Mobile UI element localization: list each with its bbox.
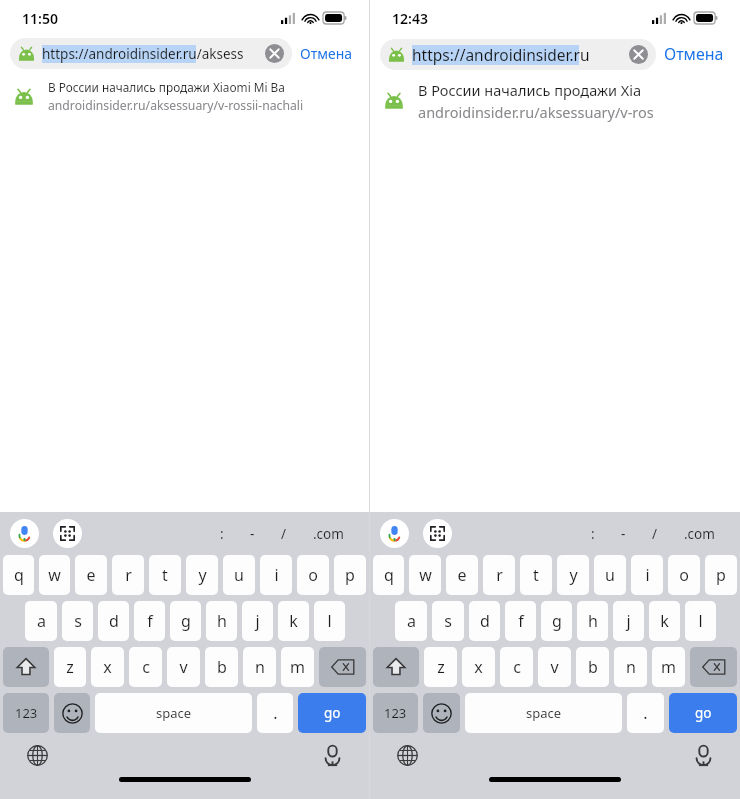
button[interactable]: - [237, 519, 268, 549]
button[interactable]: w [39, 555, 70, 595]
button[interactable]: Clear text [629, 45, 648, 64]
staticText: k [660, 610, 669, 632]
button[interactable]: a [395, 601, 427, 641]
button[interactable]: space [95, 693, 252, 733]
button[interactable]: f [134, 601, 165, 641]
button[interactable]: https://androidinsider.ru [380, 39, 656, 70]
button[interactable]: Shift [373, 647, 419, 687]
button[interactable]: o [297, 555, 329, 595]
staticText: . [643, 702, 648, 724]
button[interactable]: b [205, 647, 238, 687]
button[interactable]: .com [300, 519, 357, 549]
staticText: t [533, 564, 539, 586]
button[interactable]: : [578, 519, 608, 549]
button[interactable]: Voice input [10, 519, 39, 548]
button[interactable]: Отмена [292, 39, 361, 68]
button[interactable]: h [577, 601, 608, 641]
button[interactable]: . [627, 693, 664, 733]
button[interactable]: Scan code [53, 519, 82, 548]
button[interactable]: d [469, 601, 500, 641]
button[interactable]: 123 [3, 693, 49, 733]
button[interactable]: u [223, 555, 255, 595]
button[interactable]: o [668, 555, 700, 595]
button[interactable]: 123 [373, 693, 418, 733]
button[interactable]: s [62, 601, 93, 641]
button[interactable]: n [614, 647, 647, 687]
button[interactable]: h [206, 601, 237, 641]
button[interactable]: space [465, 693, 622, 733]
button[interactable]: Voice input [380, 519, 409, 548]
button[interactable]: c [500, 647, 533, 687]
button[interactable]: Change keyboard language [392, 740, 422, 770]
button[interactable]: e [446, 555, 478, 595]
button[interactable]: v [538, 647, 571, 687]
button[interactable]: m [652, 647, 685, 687]
button[interactable]: g [170, 601, 201, 641]
staticText: g [552, 610, 562, 632]
button[interactable]: w [409, 555, 441, 595]
button[interactable]: - [608, 519, 639, 549]
button[interactable]: g [541, 601, 572, 641]
button[interactable]: a [25, 601, 57, 641]
button[interactable]: m [281, 647, 314, 687]
button[interactable]: Voice typing [317, 740, 347, 770]
staticText: space [526, 704, 562, 722]
button[interactable]: l [685, 601, 716, 641]
button[interactable]: k [649, 601, 680, 641]
button[interactable]: go [298, 693, 366, 733]
button[interactable]: t [520, 555, 552, 595]
button[interactable]: Scan code [423, 519, 452, 548]
button[interactable]: q [373, 555, 404, 595]
button[interactable]: b [576, 647, 609, 687]
button[interactable]: v [167, 647, 200, 687]
button[interactable]: p [334, 555, 366, 595]
button[interactable]: Backspace [690, 647, 737, 687]
button[interactable]: . [257, 693, 293, 733]
staticText: w [419, 564, 432, 586]
staticText: n [255, 656, 265, 678]
button[interactable]: Отмена [656, 38, 732, 70]
button[interactable]: n [243, 647, 276, 687]
button[interactable]: j [613, 601, 644, 641]
button[interactable]: e [75, 555, 107, 595]
button[interactable]: k [278, 601, 309, 641]
button[interactable]: r [483, 555, 515, 595]
button[interactable]: j [242, 601, 273, 641]
button[interactable]: u [594, 555, 626, 595]
button[interactable]: x [462, 647, 495, 687]
button[interactable]: i [631, 555, 663, 595]
staticText: m [661, 656, 676, 678]
button[interactable]: s [432, 601, 464, 641]
staticText: В России начались продажи Xia [418, 80, 642, 100]
button[interactable]: y [186, 555, 218, 595]
button[interactable]: Voice typing [688, 740, 718, 770]
button[interactable]: https://androidinsider.ru/aksess [10, 38, 292, 69]
button[interactable]: / [268, 519, 300, 549]
button[interactable]: r [112, 555, 144, 595]
button[interactable]: t [149, 555, 181, 595]
button[interactable]: Change keyboard language [22, 740, 52, 770]
button[interactable]: go [669, 693, 737, 733]
button[interactable]: z [54, 647, 86, 687]
button[interactable]: Emoji [54, 693, 90, 733]
button[interactable]: f [505, 601, 536, 641]
button[interactable]: Backspace [319, 647, 366, 687]
button[interactable]: Shift [3, 647, 49, 687]
button[interactable]: q [3, 555, 34, 595]
button[interactable]: x [91, 647, 124, 687]
button[interactable]: y [557, 555, 589, 595]
staticText: r [496, 564, 503, 586]
button[interactable]: c [129, 647, 162, 687]
button[interactable]: i [260, 555, 292, 595]
button[interactable]: .com [671, 519, 728, 549]
button[interactable]: В России начались продажи Xia [370, 76, 740, 128]
button[interactable]: В России начались продажи Xiaomi Mi Ba [0, 75, 369, 120]
button[interactable]: p [705, 555, 737, 595]
button[interactable]: l [314, 601, 345, 641]
button[interactable]: Emoji [423, 693, 460, 733]
button[interactable]: Clear text [265, 44, 284, 63]
button[interactable]: d [98, 601, 129, 641]
button[interactable]: : [207, 519, 237, 549]
button[interactable]: z [424, 647, 457, 687]
button[interactable]: / [639, 519, 671, 549]
